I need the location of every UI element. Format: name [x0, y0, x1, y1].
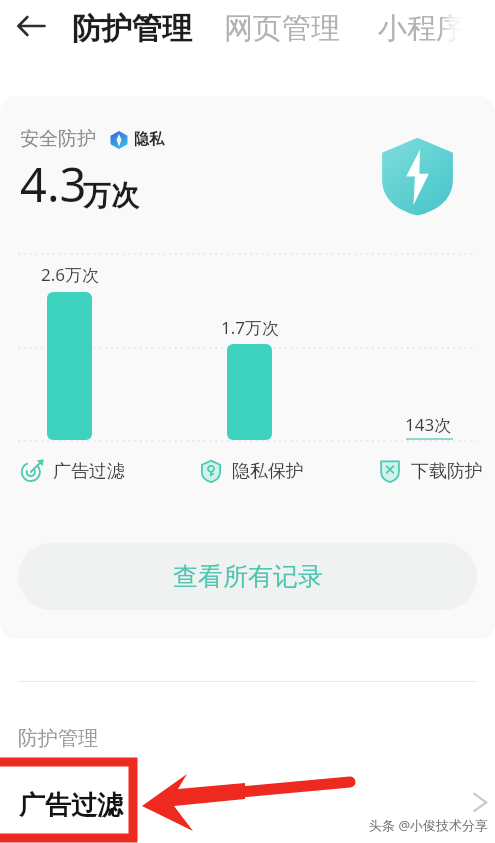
staticText: 小程序 [378, 10, 465, 47]
staticText: 广告过滤 [19, 789, 123, 822]
button[interactable]: 查看所有记录 [18, 543, 477, 610]
staticText: 143次 [405, 413, 452, 436]
button[interactable]: 防护管理 [72, 10, 192, 48]
button[interactable]: 隐私保护 [199, 459, 304, 483]
staticText: 隐私保护 [232, 460, 304, 483]
staticText: 头条 @小俊技术分享 [369, 816, 489, 834]
staticText: 万次 [83, 178, 139, 213]
staticText: 1.7万次 [221, 316, 280, 339]
staticText: 安全防护 [20, 127, 96, 151]
staticText: 广告过滤 [53, 460, 125, 483]
staticText: 防护管理 [18, 726, 98, 751]
button[interactable]: 广告过滤 [20, 459, 125, 483]
button[interactable]: 网页管理 [224, 10, 340, 47]
staticText: 隐私 [134, 130, 164, 149]
staticText: 网页管理 [224, 10, 340, 47]
staticText: 2.6万次 [41, 263, 100, 286]
other: Open [469, 791, 491, 813]
staticText: 防护管理 [72, 10, 192, 48]
button[interactable]: 下载防护 [378, 459, 483, 483]
button[interactable]: 小程序 [378, 10, 465, 47]
staticText: 4.3 [20, 152, 87, 216]
button[interactable]: 广告过滤 [0, 763, 495, 843]
staticText: 下载防护 [411, 460, 483, 483]
staticText: 查看所有记录 [173, 561, 323, 592]
button[interactable]: Back [2, 0, 60, 57]
